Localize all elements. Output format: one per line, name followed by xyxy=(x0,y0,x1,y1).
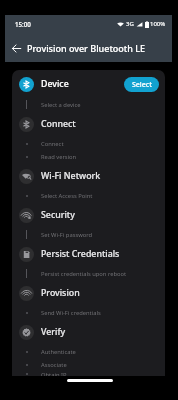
staticText: Obtain IP xyxy=(41,371,67,376)
staticText: Read version xyxy=(41,153,77,161)
staticText: Verify xyxy=(41,326,66,338)
staticText: Security xyxy=(41,209,75,221)
staticText: Persist credentials upon reboot xyxy=(41,270,127,278)
staticText: Authenticate xyxy=(41,348,76,356)
button[interactable]: Persist Credentials xyxy=(12,241,165,267)
staticText: Connect xyxy=(41,118,76,130)
staticText: Associate xyxy=(41,361,67,369)
staticText: Provision xyxy=(41,287,80,299)
button[interactable]: Security xyxy=(12,202,165,228)
staticText: Set Wi-Fi password xyxy=(41,231,93,239)
button[interactable]: Select xyxy=(124,77,159,92)
button[interactable]: Provision xyxy=(12,280,165,306)
staticText: 3G xyxy=(126,20,134,28)
staticText: 100% xyxy=(150,20,166,28)
button[interactable]: Wi-Fi Network xyxy=(12,163,165,189)
staticText: 15:00 xyxy=(15,20,31,28)
button[interactable]: Device xyxy=(12,70,165,98)
staticText: Persist Credentials xyxy=(41,248,120,260)
staticText: Select Access Point xyxy=(41,192,93,200)
button[interactable]: Connect xyxy=(12,111,165,137)
staticText: Wi-Fi Network xyxy=(41,170,101,182)
button[interactable]: Verify xyxy=(12,319,165,345)
staticText: Select xyxy=(132,80,152,90)
staticText: Connect xyxy=(41,140,64,148)
staticText: Select a device xyxy=(41,101,81,109)
staticText: Provision over Bluetooth LE xyxy=(27,42,146,54)
staticText: Device xyxy=(41,78,69,90)
staticText: Send Wi-Fi credentials xyxy=(41,309,101,317)
button[interactable]: Back xyxy=(8,40,24,56)
